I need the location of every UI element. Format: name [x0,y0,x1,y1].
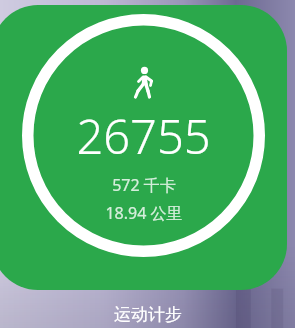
button[interactable]: Steps [0,5,287,290]
staticText: 运动计步 [114,304,182,325]
staticText: 572 千卡 [112,174,176,196]
button[interactable]: 运动计步 [0,304,295,325]
other: Steps [131,66,157,100]
staticText: 18.94 公里 [105,202,183,224]
staticText: 26755 [76,104,211,168]
